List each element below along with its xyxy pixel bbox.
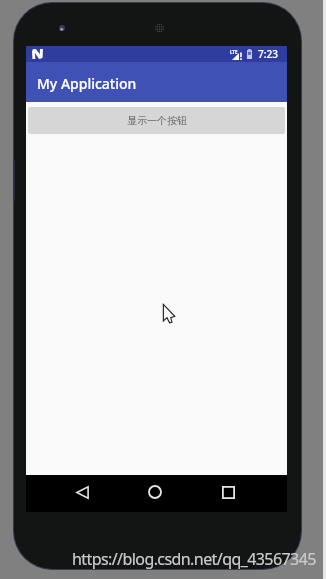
button[interactable]: Back (68, 478, 97, 507)
button[interactable]: 显示一个按钮 (28, 107, 285, 134)
staticText: 7:23 (258, 47, 278, 61)
staticText: LTE (230, 49, 238, 55)
staticText: 显示一个按钮 (127, 114, 187, 127)
button[interactable]: Home (140, 477, 169, 506)
staticText: My Application (37, 74, 137, 93)
staticText: https://blog.csdn.net/qq_43567345 (72, 548, 316, 570)
button[interactable]: Recent apps (214, 478, 243, 507)
